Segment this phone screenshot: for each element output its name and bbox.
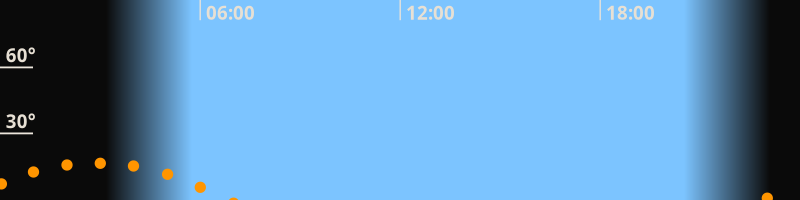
staticText: 06:00 bbox=[206, 0, 255, 25]
staticText: 30° bbox=[6, 109, 36, 133]
staticText: 60° bbox=[6, 43, 36, 67]
staticText: 18:00 bbox=[606, 0, 655, 25]
staticText: 12:00 bbox=[406, 0, 455, 25]
